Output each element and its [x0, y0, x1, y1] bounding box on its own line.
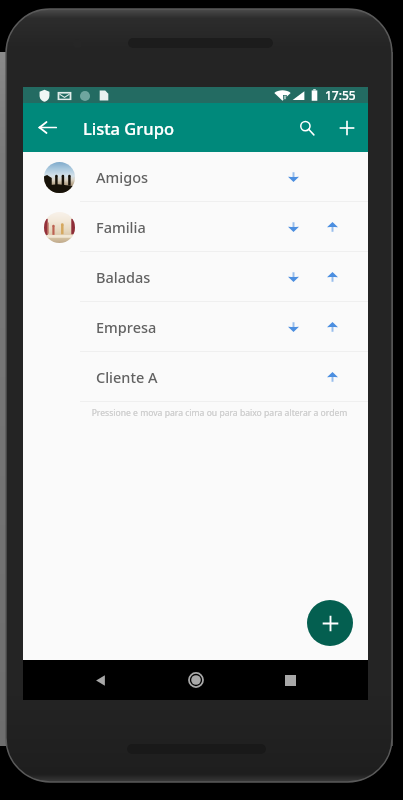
button[interactable]: Move down [274, 202, 313, 252]
staticText: Cliente A [96, 367, 158, 387]
button[interactable]: Search [287, 103, 327, 152]
button[interactable]: Familia [23, 202, 368, 252]
button[interactable]: Recents [265, 660, 316, 700]
staticText: Baladas [96, 267, 151, 287]
staticText: Pressione e mova para cima ou para baixo… [71, 407, 368, 419]
button[interactable]: Move up [313, 352, 352, 402]
button[interactable]: Add group [307, 600, 353, 646]
button[interactable]: Move up [313, 252, 352, 302]
button[interactable]: Move up [313, 202, 352, 252]
button[interactable]: Add [327, 103, 367, 152]
staticText: Empresa [96, 317, 157, 337]
button[interactable]: Move down [274, 152, 313, 202]
button[interactable]: Empresa [23, 302, 368, 352]
button[interactable]: Move up [313, 302, 352, 352]
button[interactable]: Cliente A [23, 352, 368, 402]
button[interactable]: Baladas [23, 252, 368, 302]
button[interactable]: Move down [274, 252, 313, 302]
staticText: Familia [96, 217, 146, 237]
staticText: Amigos [96, 167, 149, 187]
button[interactable]: Amigos [23, 152, 368, 202]
staticText: 17:55 [325, 87, 356, 103]
button[interactable]: Back [75, 660, 126, 700]
staticText: Lista Grupo [83, 117, 174, 139]
button[interactable]: Home [170, 660, 221, 700]
button[interactable]: Move down [274, 302, 313, 352]
button[interactable]: Back [23, 103, 71, 152]
